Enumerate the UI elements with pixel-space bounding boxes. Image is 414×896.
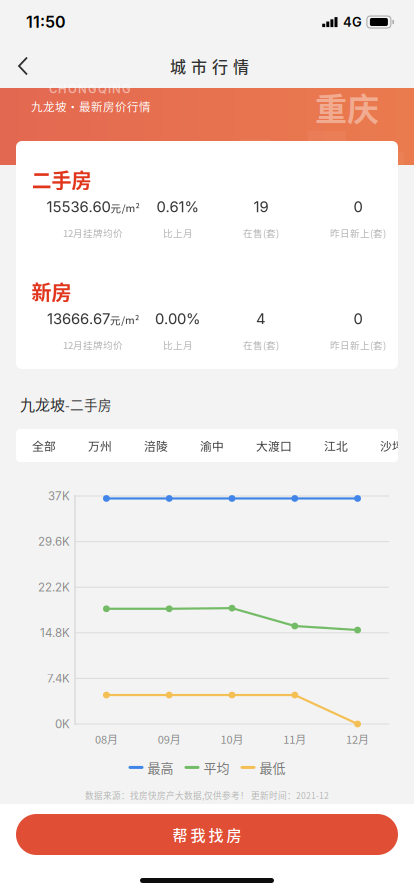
staticText: 22.2K <box>38 580 70 594</box>
staticText: 12月挂牌均价 <box>63 226 123 240</box>
staticText: 元/m² <box>110 312 139 327</box>
staticText: 13666.67 <box>47 310 110 328</box>
staticText: 昨日新上(套) <box>330 338 386 352</box>
button[interactable]: 返回 <box>0 44 46 88</box>
button[interactable]: 涪陵 <box>128 429 184 462</box>
staticText: 昨日新上(套) <box>330 226 386 240</box>
staticText: 元/m² <box>110 200 139 215</box>
staticText: 12月挂牌均价 <box>63 338 123 352</box>
staticText: 渝中 <box>200 437 224 454</box>
staticText: 九龙坡 <box>20 393 65 415</box>
staticText: 0.00% <box>155 310 201 328</box>
staticText: 九龙坡·最新房价行情 <box>31 98 151 115</box>
staticText: 09月 <box>158 731 181 747</box>
staticText: 10月 <box>220 731 243 747</box>
staticText: -二手房 <box>65 395 112 414</box>
staticText: 沙坪坝 <box>380 437 414 454</box>
staticText: 11月 <box>283 731 306 747</box>
staticText: 0.61% <box>156 198 199 216</box>
staticText: 29.6K <box>38 535 70 548</box>
button[interactable]: 全部 <box>16 429 72 462</box>
staticText: 全部 <box>32 437 56 454</box>
button[interactable]: 大渡口 <box>240 429 308 462</box>
staticText: 19 <box>253 198 268 216</box>
staticText: 数据来源：找房快房产大数据,仅供参考！ 更新时间：2021-12 <box>85 789 329 801</box>
button[interactable]: 帮我找房 <box>16 814 398 855</box>
button[interactable]: 江北 <box>308 429 364 462</box>
staticText: 11:50 <box>26 12 66 32</box>
staticText: 最高 <box>147 758 173 777</box>
staticText: 4 <box>256 310 266 328</box>
staticText: 0 <box>353 310 362 328</box>
staticText: 在售(套) <box>243 226 279 240</box>
staticText: 二手房 <box>31 165 91 194</box>
staticText: 08月 <box>95 731 118 747</box>
staticText: 比上月 <box>163 226 193 240</box>
button[interactable]: 万州 <box>72 429 128 462</box>
staticText: 最低 <box>259 758 285 777</box>
staticText: 4G <box>343 14 362 30</box>
staticText: CHONGQING <box>49 82 135 96</box>
staticText: 14.8K <box>40 626 70 640</box>
staticText: 新房 <box>31 277 71 306</box>
staticText: 15536.60 <box>46 198 110 216</box>
staticText: 城市行情 <box>170 54 249 78</box>
staticText: 重庆 <box>315 84 379 130</box>
staticText: 0K <box>55 717 70 731</box>
staticText: 平均 <box>203 758 229 777</box>
staticText: 37K <box>48 489 70 503</box>
staticText: 万州 <box>88 437 112 454</box>
staticText: 0 <box>353 198 362 216</box>
button[interactable]: 沙坪坝 <box>364 429 414 462</box>
staticText: 在售(套) <box>243 338 279 352</box>
staticText: 12月 <box>346 731 369 747</box>
staticText: 7.4K <box>47 671 70 685</box>
staticText: 大渡口 <box>256 437 292 454</box>
staticText: 帮我找房 <box>172 824 241 845</box>
staticText: 比上月 <box>163 338 193 352</box>
staticText: 江北 <box>324 437 348 454</box>
staticText: 涪陵 <box>144 437 168 454</box>
button[interactable]: 渝中 <box>184 429 240 462</box>
